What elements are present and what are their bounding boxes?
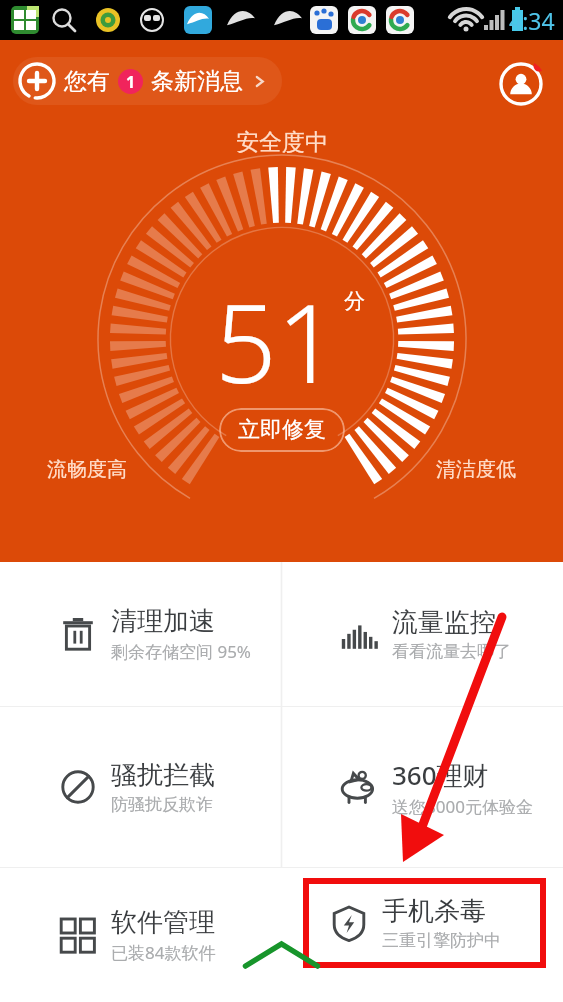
button[interactable]: Account — [496, 59, 546, 109]
button[interactable]: 立即修复 — [219, 408, 345, 452]
button[interactable]: 360理财 — [281, 707, 563, 867]
staticText: 4:34 — [509, 5, 555, 36]
staticText: 送您8000元体验金 — [392, 795, 533, 818]
staticText: 软件管理 — [111, 906, 215, 939]
staticText: 51 — [215, 268, 339, 415]
staticText: 防骚扰反欺诈 — [111, 794, 213, 815]
staticText: 清理加速 — [111, 605, 215, 638]
staticText: 看看流量去哪了 — [392, 641, 511, 662]
staticText: 剩余存储空间 95% — [111, 640, 251, 663]
button[interactable]: 流量监控 — [281, 562, 563, 706]
staticText: 手机杀毒 — [382, 895, 486, 928]
staticText: 1 — [126, 71, 136, 93]
button[interactable]: 清理加速 — [0, 562, 281, 706]
staticText: 立即修复 — [238, 416, 326, 444]
staticText: 已装84款软件 — [111, 941, 216, 964]
staticText: 三重引擎防护中 — [382, 930, 501, 951]
staticText: 分 — [344, 288, 365, 314]
staticText: 条新消息 — [151, 67, 243, 96]
staticText: 您有 — [64, 67, 110, 96]
staticText: 安全度中 — [236, 128, 328, 157]
button[interactable]: 骚扰拦截 — [0, 707, 281, 867]
staticText: 骚扰拦截 — [111, 759, 215, 792]
staticText: 清洁度低 — [436, 457, 516, 482]
staticText: 流量监控 — [392, 606, 496, 639]
staticText: 流畅度高 — [47, 457, 127, 482]
staticText: 360理财 — [392, 757, 489, 793]
button[interactable]: 手机杀毒 — [303, 878, 546, 968]
button[interactable]: 软件管理 — [0, 868, 281, 1002]
button[interactable]: 您有 — [13, 57, 282, 105]
